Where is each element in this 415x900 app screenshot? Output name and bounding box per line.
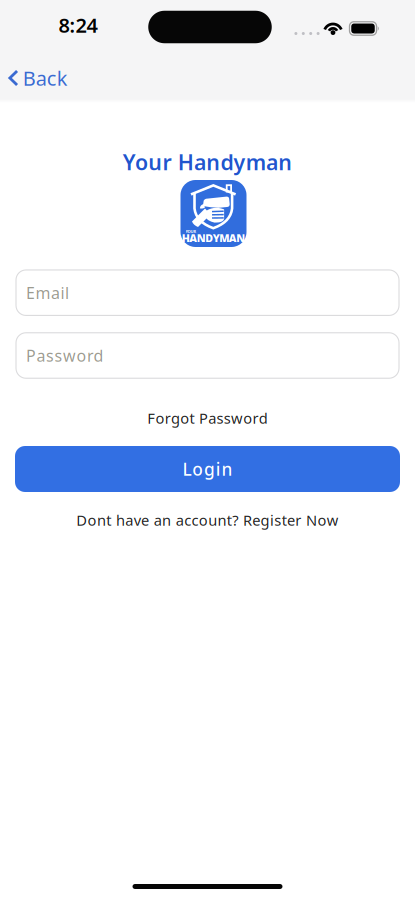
button[interactable]: Login <box>15 446 400 492</box>
staticText: HANDYMAN <box>182 231 245 245</box>
staticText: Forgot Password <box>147 408 268 428</box>
staticText: Email <box>26 282 69 303</box>
staticText: Login <box>182 457 233 480</box>
button[interactable]: Forgot Password <box>147 408 268 428</box>
staticText: Password <box>26 345 103 366</box>
staticText: Back <box>23 65 68 91</box>
button[interactable]: Dont have an account? Register Now <box>12 512 402 528</box>
staticText: 8:24 <box>58 12 97 38</box>
textField[interactable]: Email <box>26 282 399 303</box>
button[interactable]: Back <box>8 65 68 91</box>
textField[interactable]: Password <box>26 345 399 366</box>
staticText: Your Handyman <box>123 148 292 176</box>
staticText: YOUR <box>185 229 196 234</box>
staticText: Dont have an account? Register Now <box>76 510 339 530</box>
